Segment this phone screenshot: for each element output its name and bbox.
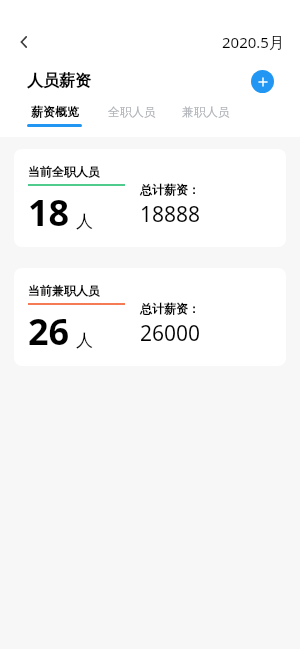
staticText: 兼职人员 [182, 104, 230, 119]
staticText: 当前全职人员 [28, 164, 100, 179]
staticText: 人 [76, 211, 93, 232]
staticText: 全职人员 [108, 104, 156, 119]
staticText: 人员薪资 [27, 71, 91, 91]
staticText: 2020.5月 [222, 32, 284, 52]
button[interactable]: Add [251, 70, 274, 93]
button[interactable]: 当前兼职人员 [14, 268, 286, 366]
staticText: 18 [28, 188, 70, 237]
button[interactable]: 当前全职人员 [14, 149, 286, 247]
button[interactable]: 全职人员 [108, 104, 156, 127]
staticText: 人 [76, 330, 93, 351]
staticText: 总计薪资： [140, 301, 200, 316]
staticText: 当前兼职人员 [28, 283, 100, 298]
staticText: 总计薪资： [140, 182, 200, 197]
button[interactable]: 兼职人员 [182, 104, 230, 127]
staticText: 26000 [140, 319, 201, 348]
staticText: 薪资概览 [31, 104, 79, 119]
staticText: 26 [28, 307, 70, 356]
staticText: 18888 [140, 200, 201, 229]
button[interactable]: 薪资概览 [27, 104, 82, 127]
button[interactable]: Back [8, 26, 40, 58]
